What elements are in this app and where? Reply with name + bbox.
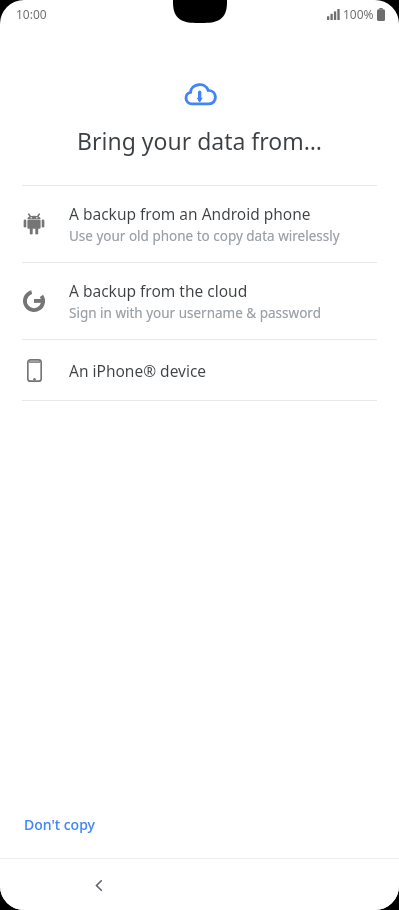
button[interactable]: A backup from the cloud — [0, 263, 399, 339]
staticText: A backup from the cloud — [69, 280, 248, 301]
button[interactable]: Back — [78, 864, 120, 906]
staticText: Bring your data from… — [0, 125, 399, 156]
staticText: Don't copy — [24, 815, 95, 834]
staticText: A backup from an Android phone — [69, 203, 311, 224]
button[interactable]: Don't copy — [10, 807, 109, 842]
staticText: 100% — [343, 6, 374, 22]
other: Cloud download — [183, 81, 217, 107]
staticText: Sign in with your username & password — [69, 304, 321, 322]
staticText: 10:00 — [16, 6, 47, 22]
staticText: An iPhone® device — [69, 360, 207, 381]
staticText: Use your old phone to copy data wireless… — [69, 227, 340, 245]
button[interactable]: A backup from an Android phone — [0, 186, 399, 262]
button[interactable]: An iPhone® device — [0, 340, 399, 400]
